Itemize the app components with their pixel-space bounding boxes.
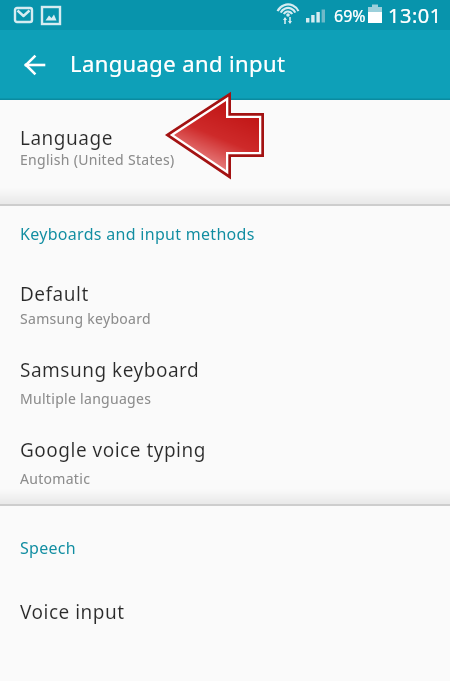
staticText: Speech bbox=[20, 537, 77, 559]
button[interactable]: Default bbox=[0, 262, 450, 341]
button[interactable]: Voice input bbox=[0, 580, 450, 660]
button[interactable] bbox=[10, 41, 58, 89]
staticText: 69% bbox=[334, 5, 366, 27]
staticText: Automatic bbox=[20, 469, 91, 488]
button[interactable]: Google voice typing bbox=[0, 420, 450, 497]
staticText: English (United States) bbox=[20, 150, 175, 169]
staticText: Language bbox=[20, 125, 113, 151]
staticText: Default bbox=[20, 281, 89, 307]
button[interactable]: Language bbox=[0, 100, 450, 190]
staticText: Samsung keyboard bbox=[20, 309, 151, 328]
staticText: Multiple languages bbox=[20, 389, 152, 408]
staticText: Language and input bbox=[70, 48, 286, 78]
staticText: 13:01 bbox=[388, 2, 442, 29]
staticText: Keyboards and input methods bbox=[20, 223, 255, 245]
staticText: Voice input bbox=[20, 599, 125, 625]
staticText: Google voice typing bbox=[20, 437, 206, 463]
button[interactable]: Samsung keyboard bbox=[0, 341, 450, 420]
staticText: Samsung keyboard bbox=[20, 357, 200, 383]
